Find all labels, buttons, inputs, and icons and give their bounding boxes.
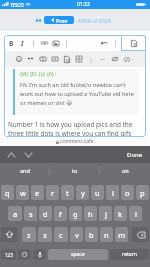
staticText: i bbox=[112, 188, 114, 198]
staticText: s bbox=[29, 209, 33, 219]
staticText: p bbox=[140, 188, 145, 198]
button[interactable]: Table bbox=[73, 51, 85, 67]
staticText: g bbox=[73, 209, 78, 219]
button[interactable]: a bbox=[8, 206, 22, 221]
staticText: b bbox=[89, 230, 94, 240]
staticText: n bbox=[104, 230, 109, 240]
staticText: 123 bbox=[5, 252, 13, 258]
staticText: z bbox=[27, 230, 31, 240]
button[interactable]: Spoiler bbox=[37, 51, 49, 67]
button[interactable]: q bbox=[1, 185, 14, 200]
button[interactable]: r bbox=[46, 185, 59, 200]
button[interactable]: File bbox=[61, 51, 73, 67]
button[interactable]: Rule bbox=[97, 51, 109, 67]
staticText: return bbox=[122, 251, 137, 258]
button[interactable]: v bbox=[70, 227, 83, 242]
staticText: — bbox=[100, 56, 106, 63]
button[interactable]: c bbox=[54, 227, 68, 242]
staticText: Number 1 is how you upload pics and the … bbox=[8, 120, 142, 137]
button[interactable]: on bbox=[100, 163, 150, 177]
button[interactable]: Rewind bbox=[33, 16, 42, 25]
staticText: 8508 of 8508 bbox=[78, 17, 112, 24]
staticText: ⋮ bbox=[88, 56, 94, 63]
button[interactable]: h bbox=[84, 206, 97, 221]
staticText: r bbox=[51, 188, 55, 198]
staticText: a bbox=[13, 209, 18, 219]
button[interactable]: Preview bbox=[121, 35, 146, 51]
button[interactable]: t bbox=[61, 185, 74, 200]
button[interactable]: to bbox=[50, 163, 100, 177]
button[interactable]: and bbox=[0, 163, 50, 177]
button[interactable]: o bbox=[121, 185, 134, 200]
staticText: and bbox=[20, 167, 30, 174]
button[interactable]: m bbox=[115, 227, 128, 242]
staticText: e bbox=[35, 188, 40, 198]
button[interactable]: e bbox=[31, 185, 44, 200]
staticText: c bbox=[59, 230, 63, 240]
button[interactable]: Emoji bbox=[18, 249, 31, 260]
staticText: 01:22 bbox=[77, 1, 90, 8]
button[interactable]: w bbox=[16, 185, 29, 200]
button[interactable]: y bbox=[76, 185, 89, 200]
button[interactable]: Emoji bbox=[13, 51, 25, 67]
button[interactable]: s bbox=[24, 206, 37, 221]
button[interactable]: g bbox=[69, 206, 82, 221]
button[interactable]: Dictate bbox=[33, 249, 46, 260]
staticText: v bbox=[75, 230, 79, 240]
staticText: to bbox=[72, 167, 78, 174]
staticText: I bbox=[21, 39, 24, 48]
button[interactable]: 123 bbox=[1, 249, 16, 260]
staticText: y bbox=[81, 188, 85, 198]
button[interactable]: Video bbox=[49, 51, 61, 67]
staticText: space bbox=[71, 251, 85, 258]
button[interactable]: d bbox=[39, 206, 52, 221]
button[interactable]: p bbox=[136, 185, 149, 200]
button[interactable]: Hide bbox=[109, 51, 121, 67]
staticText: h bbox=[88, 209, 93, 219]
button[interactable]: Quote bbox=[25, 51, 37, 67]
staticText: m bbox=[118, 230, 126, 240]
button[interactable]: Code bbox=[121, 51, 133, 67]
button[interactable]: k bbox=[114, 206, 127, 221]
button[interactable]: Prev bbox=[44, 16, 74, 24]
staticText: d bbox=[43, 209, 48, 219]
staticText: f bbox=[59, 209, 62, 219]
button[interactable]: Next field bbox=[22, 149, 34, 161]
staticText: l bbox=[135, 209, 137, 219]
button[interactable]: Link bbox=[39, 35, 50, 51]
button[interactable]: j bbox=[99, 206, 112, 221]
staticText: x bbox=[43, 230, 47, 240]
button[interactable]: Image bbox=[50, 35, 61, 51]
button[interactable]: x bbox=[38, 227, 52, 242]
button[interactable]: return bbox=[110, 249, 149, 260]
staticText: comment.cafe bbox=[60, 138, 94, 145]
button[interactable]: Backspace bbox=[132, 227, 149, 242]
staticText: o bbox=[125, 188, 130, 198]
staticText: Prev bbox=[56, 17, 68, 24]
button[interactable]: Previous field bbox=[5, 149, 17, 161]
button[interactable]: b bbox=[85, 227, 98, 242]
staticText: on bbox=[122, 167, 129, 174]
staticText: w bbox=[20, 188, 26, 198]
button[interactable]: Shift bbox=[1, 227, 18, 242]
staticText: Done bbox=[127, 151, 143, 159]
staticText: q bbox=[5, 188, 10, 198]
button[interactable]: Bold bbox=[6, 35, 17, 51]
button[interactable]: Done bbox=[120, 148, 150, 162]
button[interactable]: n bbox=[100, 227, 113, 242]
staticText: Ffs I'm such an old fucke(/o newbie can'… bbox=[20, 81, 136, 106]
staticText: B bbox=[9, 39, 14, 48]
button[interactable]: Italic bbox=[17, 35, 28, 51]
button[interactable]: More bbox=[85, 51, 97, 67]
staticText: u bbox=[95, 188, 100, 198]
button[interactable]: l bbox=[129, 206, 142, 221]
button[interactable]: z bbox=[22, 227, 36, 242]
button[interactable]: i bbox=[106, 185, 119, 200]
button[interactable]: u bbox=[91, 185, 104, 200]
button[interactable]: f bbox=[54, 206, 67, 221]
staticText: TESCO bbox=[10, 2, 24, 8]
staticText: t bbox=[66, 188, 69, 198]
staticText: k bbox=[118, 209, 123, 219]
button[interactable]: space bbox=[48, 249, 108, 260]
button[interactable]: Undo bbox=[99, 35, 110, 51]
